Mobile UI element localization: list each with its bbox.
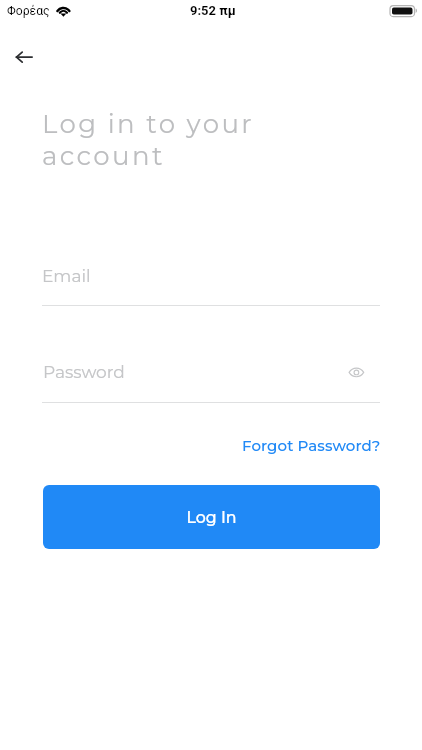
staticText: Password [43, 362, 125, 383]
button[interactable]: Log In [43, 485, 380, 549]
staticText: Log in to your account [42, 108, 255, 171]
staticText: Email [42, 266, 91, 287]
button[interactable]: Show password [344, 360, 369, 385]
staticText: Φορέας [7, 4, 50, 18]
button[interactable]: Back [2, 35, 46, 79]
staticText: Log In [186, 508, 237, 527]
button[interactable]: Forgot Password? [240, 435, 381, 455]
staticText: Forgot Password? [242, 436, 381, 454]
staticText: 9:52 πμ [190, 3, 236, 18]
